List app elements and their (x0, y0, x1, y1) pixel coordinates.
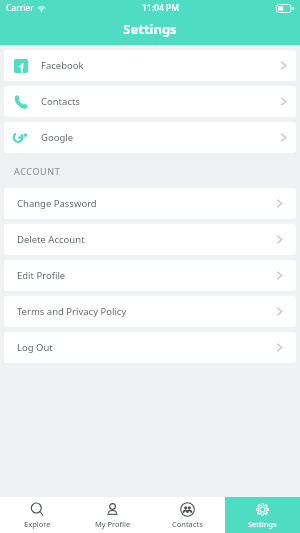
button[interactable]: Google (4, 122, 296, 153)
button[interactable]: Terms and Privacy Policy (4, 296, 296, 327)
staticText: 11:04 PM (142, 2, 179, 14)
button[interactable]: Contacts (4, 86, 296, 117)
staticText: Carrier (6, 2, 34, 14)
staticText: Contacts (41, 95, 80, 108)
button[interactable]: My Profile (75, 497, 150, 533)
staticText: Change Password (17, 197, 97, 210)
button[interactable]: Contacts (150, 497, 225, 533)
staticText: Google (41, 131, 74, 144)
button[interactable]: Explore (0, 497, 75, 533)
staticText: Edit Profile (17, 269, 66, 282)
button[interactable]: Delete Account (4, 224, 296, 255)
button[interactable]: Facebook (4, 50, 296, 81)
button[interactable]: Settings (225, 497, 300, 533)
button[interactable]: Change Password (4, 188, 296, 219)
staticText: Log Out (17, 341, 53, 354)
staticText: ACCOUNT (14, 165, 61, 177)
staticText: My Profile (95, 519, 131, 529)
staticText: Delete Account (17, 233, 85, 246)
button[interactable]: Log Out (4, 332, 296, 363)
staticText: Terms and Privacy Policy (17, 305, 127, 318)
staticText: Facebook (41, 59, 84, 72)
button[interactable]: Edit Profile (4, 260, 296, 291)
staticText: Explore (24, 519, 51, 529)
staticText: Settings (248, 519, 277, 529)
staticText: Contacts (172, 519, 203, 529)
staticText: Settings (0, 20, 300, 38)
